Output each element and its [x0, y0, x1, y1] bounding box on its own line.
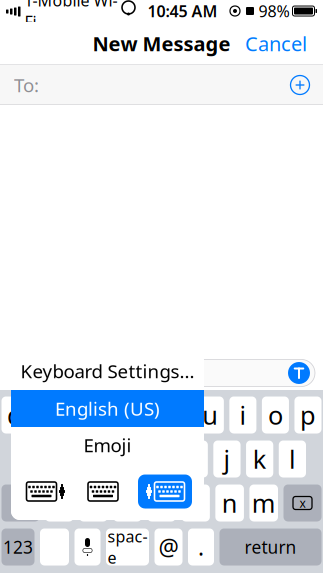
staticText: k	[253, 442, 267, 476]
staticText: New Message	[92, 30, 230, 57]
button[interactable]: j	[213, 440, 240, 477]
button[interactable]: @	[154, 528, 182, 565]
button[interactable]: i	[229, 396, 256, 433]
staticText: Emoji	[83, 433, 131, 457]
button[interactable]: Next keyboard	[40, 528, 69, 565]
staticText: j	[223, 442, 230, 476]
button[interactable]: z	[45, 484, 74, 521]
staticText: f	[124, 442, 133, 476]
staticText: T-Mobile Wi-Fi	[24, 0, 117, 32]
staticText: h	[186, 442, 202, 476]
button[interactable]: space	[106, 528, 149, 565]
button[interactable]: l	[279, 440, 306, 477]
button[interactable]: Add contact	[285, 70, 315, 100]
staticText: i	[239, 398, 246, 432]
button[interactable]: m	[249, 484, 278, 521]
staticText: u	[202, 398, 218, 432]
button[interactable]: o	[262, 396, 289, 433]
button[interactable]: n	[215, 484, 244, 521]
staticText: To:	[14, 73, 39, 97]
button[interactable]: c	[113, 484, 142, 521]
button[interactable]: Send	[286, 360, 312, 386]
button[interactable]: v	[147, 484, 176, 521]
button[interactable]: Shift	[1, 484, 39, 521]
button[interactable]: Split keyboard right	[138, 474, 192, 508]
staticText: @	[158, 532, 178, 562]
button[interactable]: Full keyboard	[81, 476, 125, 506]
staticText: 10:45 AM	[147, 0, 217, 22]
button[interactable]: q	[1, 396, 29, 433]
button[interactable]: k	[246, 440, 273, 477]
button[interactable]: u	[197, 396, 224, 433]
staticText: Keyboard Settings...	[20, 359, 194, 383]
staticText: t	[141, 398, 150, 432]
button[interactable]: English (US)	[11, 390, 204, 427]
staticText: o	[268, 398, 283, 432]
button[interactable]: b	[181, 484, 210, 521]
staticText: w	[38, 398, 58, 432]
staticText: m	[252, 486, 276, 520]
staticText: x	[87, 486, 100, 520]
button[interactable]: Split keyboard left	[24, 476, 68, 506]
staticText: p	[300, 398, 316, 432]
button[interactable]: x	[79, 484, 108, 521]
button[interactable]: r	[99, 396, 126, 433]
button[interactable]: .	[188, 528, 214, 565]
button[interactable]: g	[148, 440, 175, 477]
staticText: Cancel	[245, 30, 307, 57]
staticText: y	[171, 398, 184, 432]
button[interactable]: y	[164, 396, 191, 433]
staticText: n	[222, 486, 238, 520]
staticText: b	[188, 486, 204, 520]
staticText: r	[108, 398, 118, 432]
staticText: 98%	[258, 0, 289, 22]
staticText: return	[244, 535, 296, 558]
staticText: space	[107, 526, 147, 568]
staticText: g	[153, 442, 169, 476]
button[interactable]: h	[181, 440, 208, 477]
staticText: q	[7, 398, 23, 432]
staticText: l	[289, 442, 296, 476]
staticText: x	[299, 495, 305, 511]
staticText: v	[155, 486, 168, 520]
staticText: d	[88, 442, 104, 476]
button[interactable]: e	[67, 396, 94, 433]
button[interactable]: d	[82, 440, 110, 477]
button[interactable]: Emoji	[11, 427, 204, 463]
button[interactable]: w	[34, 396, 61, 433]
button[interactable]: t	[132, 396, 159, 433]
button[interactable]: p	[294, 396, 322, 433]
staticText: .	[198, 532, 204, 562]
button[interactable]: Keyboard Settings...	[11, 352, 204, 390]
staticText: English (US)	[55, 396, 160, 421]
button[interactable]: return	[219, 528, 321, 565]
staticText: e	[73, 398, 87, 432]
button[interactable]: f	[115, 440, 142, 477]
button[interactable]: 123	[1, 528, 34, 565]
button[interactable]: Cancel	[235, 24, 317, 63]
button[interactable]: Dictate	[74, 528, 100, 565]
button[interactable]: Delete	[283, 484, 321, 521]
staticText: z	[53, 486, 65, 520]
staticText: 123	[3, 535, 33, 558]
